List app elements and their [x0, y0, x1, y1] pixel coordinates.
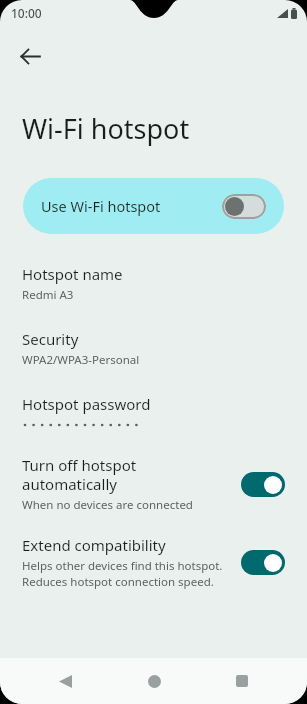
staticText: Wi-Fi hotspot [22, 110, 190, 147]
button[interactable]: Hotspot name [0, 264, 307, 303]
button[interactable]: Security [0, 329, 307, 368]
button[interactable]: Use Wi-Fi hotspot [23, 178, 284, 234]
button[interactable]: Extend compatibility [0, 535, 307, 589]
staticText: Extend compatibility [22, 535, 166, 555]
button[interactable]: On [241, 472, 285, 497]
staticText: Hotspot password [22, 394, 151, 414]
button[interactable]: Hotspot password [0, 394, 307, 429]
button[interactable]: Turn off hotspot automatically [0, 455, 307, 513]
staticText: WPA2/WPA3-Personal [22, 352, 140, 368]
button[interactable]: Off [222, 194, 266, 219]
staticText: Turn off hotspot automatically [22, 455, 137, 494]
button[interactable]: Back [8, 34, 52, 78]
staticText: Redmi A3 [22, 287, 74, 303]
button[interactable]: Home [131, 658, 177, 704]
staticText: Security [22, 329, 79, 349]
button[interactable]: On [241, 550, 285, 575]
button[interactable]: Back [42, 658, 88, 704]
staticText: Hotspot name [22, 264, 123, 284]
staticText: Use Wi-Fi hotspot [41, 196, 222, 216]
staticText: When no devices are connected [22, 497, 193, 513]
button[interactable]: Recent apps [219, 658, 265, 704]
staticText: 10:00 [11, 5, 42, 21]
staticText: Helps other devices find this hotspot. R… [22, 558, 223, 589]
